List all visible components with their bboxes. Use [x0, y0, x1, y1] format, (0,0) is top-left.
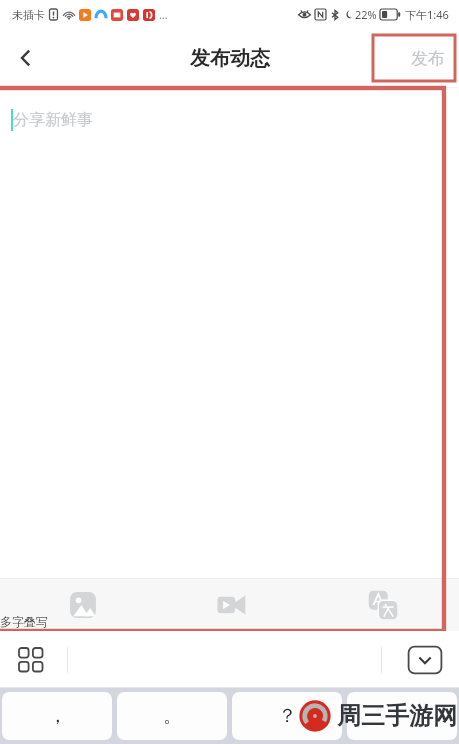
button[interactable]: Back [0, 32, 52, 84]
staticText: 多字叠写 [0, 614, 48, 629]
button[interactable]: Add video [153, 579, 306, 631]
staticText: ？ [278, 704, 297, 728]
button[interactable]: ， [2, 692, 112, 740]
staticText: … [159, 7, 168, 22]
button[interactable]: 发布 [411, 48, 445, 69]
staticText: 未插卡 [12, 8, 45, 22]
button[interactable]: 分享新鲜事 [0, 88, 459, 578]
staticText: 22% [355, 7, 377, 22]
button[interactable]: ？ [232, 692, 342, 740]
button[interactable]: 。 [117, 692, 227, 740]
button[interactable]: Keyboard menu [8, 637, 54, 683]
staticText: 周三手游网 [337, 701, 457, 731]
staticText: 发布 [411, 48, 445, 69]
staticText: ， [48, 704, 67, 728]
staticText: 。 [163, 704, 182, 728]
button[interactable]: Hide keyboard [405, 644, 445, 676]
staticText: 分享新鲜事 [13, 110, 93, 130]
staticText: 发布动态 [190, 46, 270, 71]
staticText: 下午1:46 [405, 7, 449, 22]
button[interactable] [347, 692, 457, 740]
button[interactable]: Translate [306, 579, 459, 631]
button[interactable]: Add photo [0, 579, 153, 631]
